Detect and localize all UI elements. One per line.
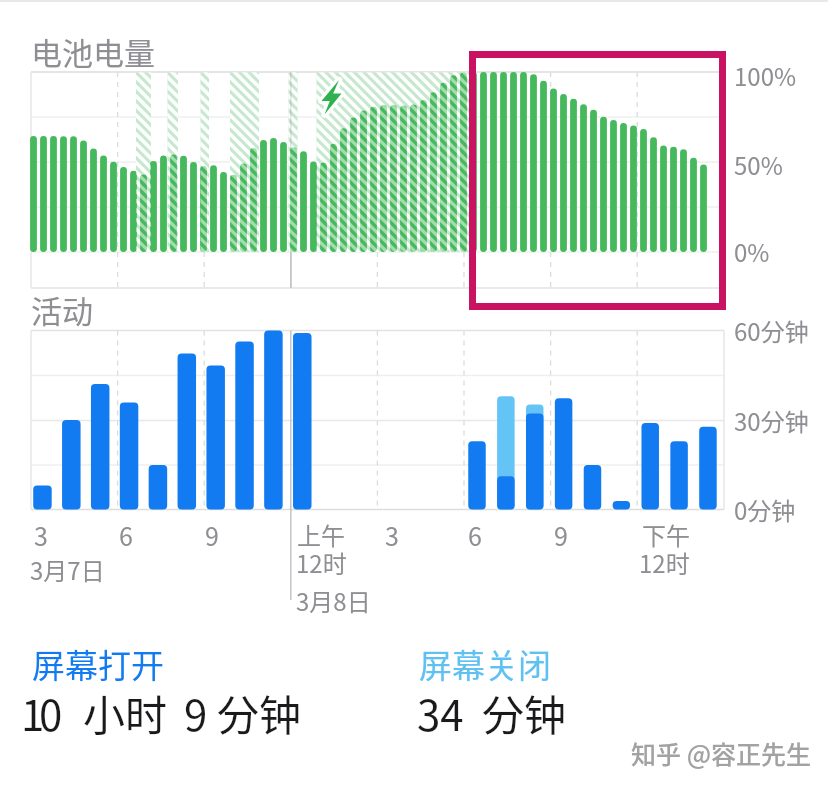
staticText: 12时 xyxy=(639,545,690,580)
staticText: 3 xyxy=(34,517,48,553)
staticText: 下午 xyxy=(642,517,690,552)
staticText: 0 xyxy=(39,682,63,743)
staticText: 60分钟 xyxy=(734,313,809,348)
staticText: 30分钟 xyxy=(734,403,809,438)
staticText: 知乎 @容正先生 xyxy=(631,735,811,771)
staticText: 上午 xyxy=(297,517,345,552)
staticText: 34 xyxy=(417,682,464,743)
staticText: 3月7日 xyxy=(30,552,105,587)
staticText: 6 xyxy=(468,517,482,553)
staticText: 电池电量 xyxy=(31,29,155,74)
staticText: 6 xyxy=(119,517,133,553)
staticText: 1 xyxy=(21,682,45,743)
staticText: 0分钟 xyxy=(734,492,796,527)
staticText: 分钟 xyxy=(482,682,567,743)
staticText: 3 xyxy=(385,517,399,553)
staticText: 9 xyxy=(184,682,208,743)
staticText: 3月8日 xyxy=(296,583,371,618)
staticText: 9 xyxy=(205,517,219,553)
staticText: 屏幕关闭 xyxy=(419,640,551,688)
staticText: 小时 xyxy=(83,682,168,743)
staticText: 分钟 xyxy=(217,682,302,743)
staticText: 屏幕打开 xyxy=(32,640,164,688)
staticText: 活动 xyxy=(31,287,93,332)
staticText: 12时 xyxy=(296,545,347,580)
staticText: 100% xyxy=(734,58,797,93)
staticText: 9 xyxy=(554,517,568,553)
staticText: 0% xyxy=(734,234,770,269)
staticText: 50% xyxy=(734,147,783,182)
